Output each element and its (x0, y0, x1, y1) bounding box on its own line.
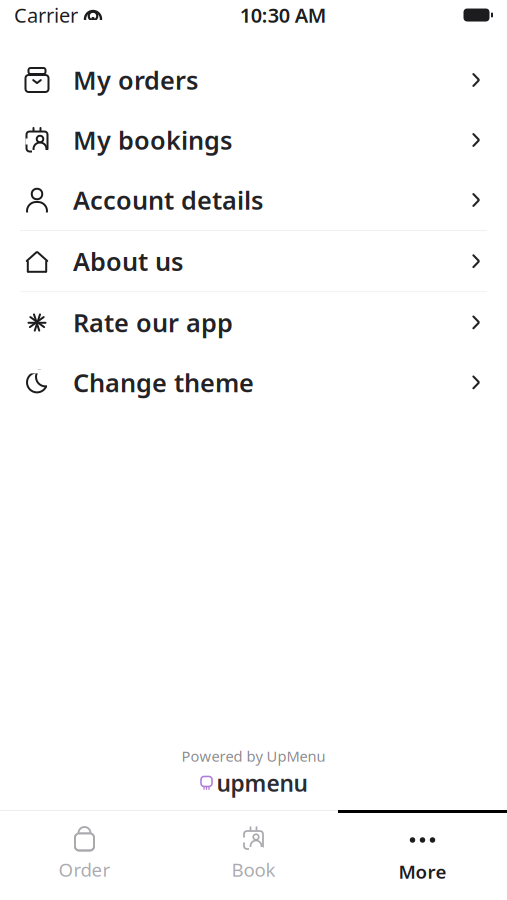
staticText: More (398, 859, 446, 884)
staticText: My orders (73, 63, 198, 97)
staticText: My bookings (73, 123, 232, 157)
button[interactable]: More (338, 810, 507, 900)
button[interactable]: Order (0, 810, 169, 900)
button[interactable]: Book (169, 810, 338, 900)
button[interactable]: Account details (0, 170, 507, 230)
staticText: upmenu (216, 768, 307, 798)
staticText: Order (58, 857, 110, 882)
button[interactable]: My orders (0, 50, 507, 110)
button[interactable]: Change theme (0, 352, 507, 412)
staticText: Account details (73, 183, 263, 217)
staticText: Change theme (73, 366, 254, 399)
button[interactable]: My bookings (0, 110, 507, 170)
staticText: Rate our app (73, 306, 233, 339)
staticText: Carrier (14, 2, 78, 28)
staticText: 10:30 AM (240, 2, 327, 28)
button[interactable]: About us (0, 231, 507, 291)
staticText: Powered by UpMenu (181, 746, 325, 766)
staticText: About us (73, 244, 183, 278)
button[interactable]: Rate our app (0, 292, 507, 352)
staticText: Book (231, 857, 275, 882)
